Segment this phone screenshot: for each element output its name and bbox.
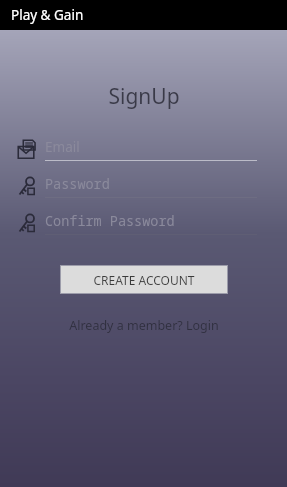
staticText: Password <box>45 175 110 193</box>
button[interactable]: Email <box>17 138 257 161</box>
staticText: Email <box>45 138 80 156</box>
button[interactable]: Already a member? Login <box>59 314 229 337</box>
staticText: CREATE ACCOUNT <box>93 272 195 288</box>
button[interactable]: Password <box>17 175 257 198</box>
staticText: Play & Gain <box>11 6 84 24</box>
other: Password <box>17 176 38 197</box>
staticText: Confirm Password <box>45 212 175 230</box>
other: Confirm password <box>17 213 38 234</box>
other: Email <box>17 139 38 160</box>
button[interactable]: Confirm password <box>17 212 257 235</box>
staticText: SignUp <box>108 82 180 111</box>
button[interactable]: CREATE ACCOUNT <box>60 265 228 294</box>
staticText: Already a member? Login <box>69 317 219 334</box>
